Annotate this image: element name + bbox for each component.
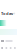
button[interactable]: Profile: [13, 12, 15, 15]
button[interactable]: Tab: [0, 47, 4, 49]
staticText: Today: [1, 11, 13, 16]
button[interactable]: Tab: [13, 47, 17, 49]
button[interactable]: Trends: [0, 29, 17, 35]
button[interactable]: Activity highlight: [0, 20, 7, 26]
button[interactable]: [0, 40, 17, 42]
button[interactable]: Tab: [8, 47, 13, 49]
button[interactable]: Tab: [4, 47, 8, 49]
